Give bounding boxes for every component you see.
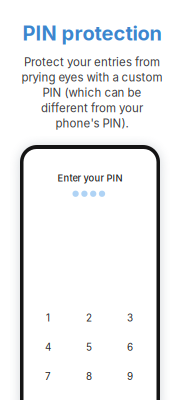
staticText: 1 — [46, 312, 50, 324]
button[interactable]: 1 — [27, 314, 68, 321]
button[interactable]: 5 — [68, 344, 109, 351]
staticText: PIN (which can be — [42, 86, 141, 100]
staticText: Protect your entries from — [24, 55, 160, 69]
staticText: 3 — [127, 312, 133, 324]
staticText: 5 — [86, 341, 92, 353]
button[interactable]: 7 — [27, 373, 68, 380]
staticText: 4 — [45, 341, 51, 353]
staticText: 6 — [127, 341, 133, 353]
staticText: Enter your PIN — [57, 172, 122, 184]
staticText: 9 — [127, 370, 133, 382]
button[interactable]: 6 — [109, 344, 150, 351]
button[interactable]: 9 — [109, 373, 150, 380]
staticText: 7 — [45, 370, 51, 382]
staticText: different from your — [41, 101, 143, 115]
staticText: phone's PIN). — [55, 116, 128, 130]
staticText: PIN protection — [22, 21, 161, 45]
button[interactable]: 4 — [27, 344, 68, 351]
button[interactable]: 3 — [109, 314, 150, 321]
staticText: 2 — [86, 312, 92, 324]
staticText: prying eyes with a custom — [21, 70, 162, 84]
button[interactable]: 8 — [68, 373, 109, 380]
staticText: 8 — [86, 370, 92, 382]
button[interactable]: 2 — [68, 314, 109, 321]
